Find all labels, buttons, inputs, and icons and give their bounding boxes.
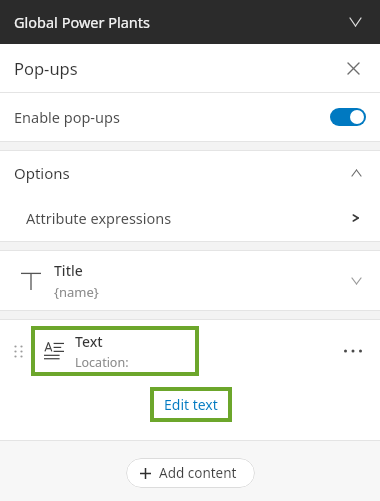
- staticText: Options: [14, 163, 70, 183]
- staticText: Attribute expressions: [26, 208, 172, 228]
- button[interactable]: Enable pop-ups toggle: [330, 108, 366, 126]
- button[interactable]: Add content: [126, 458, 255, 488]
- button[interactable]: Text: [31, 326, 199, 376]
- other: Collapse panel: [344, 11, 366, 33]
- staticText: Pop-ups: [14, 57, 78, 79]
- other: Open: [346, 209, 364, 227]
- other: Reorder: [8, 341, 28, 361]
- staticText: Add content: [159, 464, 237, 482]
- button[interactable]: More options: [340, 338, 366, 364]
- other: Expand title: [346, 271, 366, 291]
- button[interactable]: Enable pop-ups: [0, 93, 380, 141]
- button[interactable]: Global Power Plants: [0, 0, 380, 44]
- staticText: Enable pop-ups: [14, 107, 120, 127]
- staticText: Location: {country_long}T...: [75, 354, 195, 371]
- staticText: Text: [75, 332, 103, 351]
- button[interactable]: Title: [0, 251, 380, 310]
- staticText: Title: [54, 261, 83, 280]
- staticText: Global Power Plants: [14, 12, 151, 32]
- button[interactable]: Options: [0, 151, 380, 195]
- staticText: Edit text: [164, 395, 218, 414]
- staticText: {name}: [54, 283, 99, 301]
- button[interactable]: Edit text: [150, 387, 232, 422]
- button[interactable]: Close: [340, 55, 366, 81]
- button[interactable]: Attribute expressions: [0, 195, 380, 241]
- other: Collapse options: [346, 163, 366, 183]
